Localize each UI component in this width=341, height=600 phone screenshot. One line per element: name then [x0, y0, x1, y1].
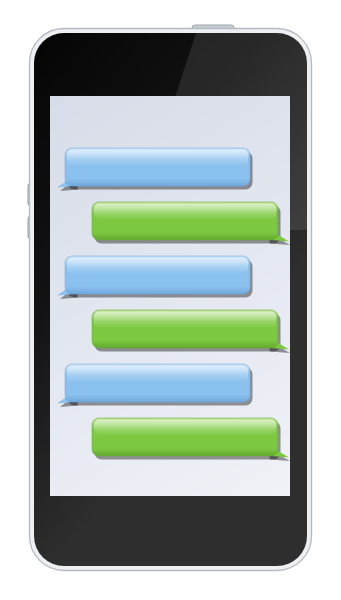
button[interactable]: Smartphone chat conversation mockup [0, 0, 341, 600]
